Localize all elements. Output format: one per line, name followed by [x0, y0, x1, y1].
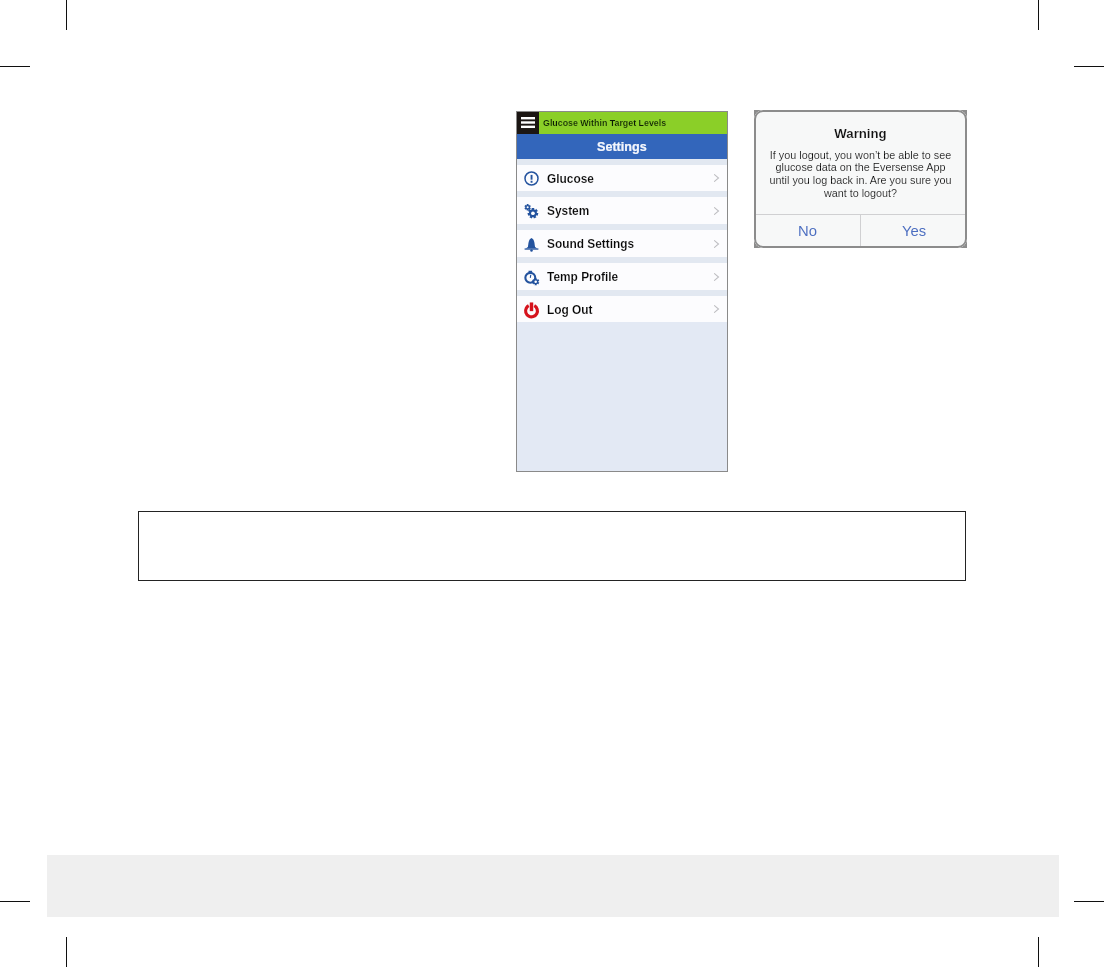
staticText: Glucose	[547, 172, 594, 185]
staticText: Temp Profile	[547, 270, 619, 283]
button[interactable]: Sound Settings	[516, 230, 728, 257]
staticText: System	[547, 204, 590, 217]
staticText: Log Out	[547, 303, 593, 316]
staticText: If you logout, you won’t be able to see …	[754, 149, 967, 199]
staticText: Yes	[902, 223, 927, 240]
button[interactable]: No	[754, 215, 860, 248]
staticText: No	[798, 223, 817, 240]
button[interactable]: Menu	[516, 111, 539, 134]
staticText: Settings	[597, 140, 647, 154]
button[interactable]: Glucose	[516, 165, 728, 191]
button[interactable]: System	[516, 197, 728, 224]
button[interactable]: Temp Profile	[516, 263, 728, 290]
button[interactable]: Log Out	[516, 296, 728, 322]
staticText: Sound Settings	[547, 237, 635, 250]
staticText: Warning	[754, 126, 967, 141]
button[interactable]: Yes	[861, 215, 967, 248]
staticText: Glucose Within Target Levels	[543, 118, 667, 128]
